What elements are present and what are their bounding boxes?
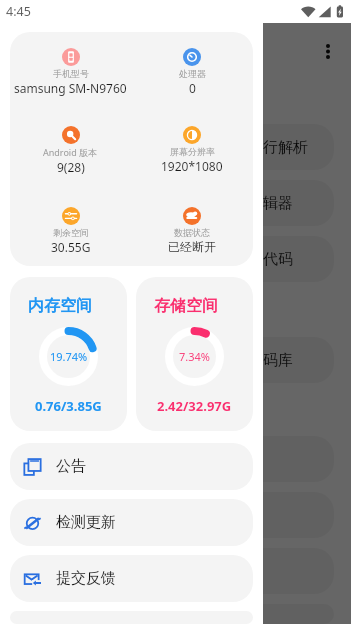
staticText: 文本编辑器 <box>218 194 293 213</box>
staticText: 4:45 <box>6 3 31 20</box>
staticText: 屏幕分辨率 <box>170 146 215 157</box>
staticText: 内存空间 <box>28 296 92 316</box>
button[interactable]: 内存空间 <box>10 277 127 431</box>
staticText: 我的代码库 <box>218 351 293 370</box>
staticText: 9(28) <box>57 159 85 175</box>
button[interactable] <box>0 180 334 226</box>
staticText: 处理器 <box>179 68 206 79</box>
staticText: 0.76/3.85G <box>35 397 102 415</box>
staticText: 数据状态 <box>174 227 210 238</box>
staticText: 30.55G <box>51 239 91 255</box>
staticText: 公告 <box>56 457 86 476</box>
staticText: samsung SM-N9760 <box>14 80 127 96</box>
staticText: 0 <box>189 80 196 96</box>
staticText: 提交反馈 <box>56 569 116 588</box>
button[interactable] <box>0 548 334 594</box>
staticText: 存储空间 <box>154 296 218 316</box>
staticText: 对文件进行解析 <box>203 138 308 157</box>
staticText: 扫描代码 <box>233 250 293 269</box>
staticText: 1920*1080 <box>161 158 223 174</box>
button[interactable]: More options <box>311 34 345 68</box>
staticText: 手机型号 <box>53 68 89 79</box>
button[interactable] <box>0 124 334 170</box>
staticText: 2.42/32.97G <box>157 397 232 415</box>
staticText: 7.34% <box>179 349 210 364</box>
button[interactable]: 检测更新 <box>10 499 253 546</box>
staticText: 19.74% <box>50 349 88 364</box>
button[interactable] <box>0 337 334 383</box>
staticText: Android 版本 <box>43 146 98 158</box>
staticText: 检测更新 <box>56 513 116 532</box>
button[interactable] <box>0 236 334 282</box>
button[interactable]: 公告 <box>10 443 253 490</box>
button[interactable] <box>0 436 334 482</box>
staticText: 剩余空间 <box>53 227 89 238</box>
staticText: 已经断开 <box>168 239 216 254</box>
button[interactable] <box>0 492 334 538</box>
button[interactable]: 存储空间 <box>136 277 253 431</box>
button[interactable]: 提交反馈 <box>10 555 253 602</box>
button[interactable] <box>0 604 334 624</box>
